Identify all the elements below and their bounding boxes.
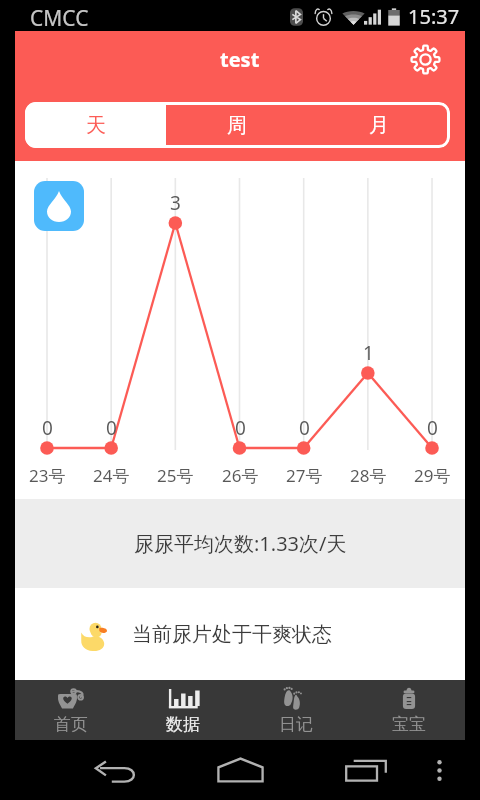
staticText: 月 bbox=[369, 113, 389, 138]
staticText: 0 bbox=[299, 415, 310, 437]
staticText: 23号 bbox=[29, 464, 66, 487]
button[interactable]: 月 bbox=[308, 102, 450, 148]
staticText: 26号 bbox=[222, 464, 259, 487]
staticText: 0 bbox=[427, 415, 438, 437]
button[interactable]: Home bbox=[205, 750, 275, 790]
button[interactable]: 宝宝 bbox=[352, 680, 465, 740]
button[interactable]: Pee record bbox=[34, 181, 84, 231]
staticText: 数据 bbox=[166, 714, 200, 735]
staticText: 28号 bbox=[350, 464, 387, 487]
staticText: 27号 bbox=[286, 464, 323, 487]
staticText: 当前尿片处于干爽状态 bbox=[132, 622, 332, 647]
button[interactable]: Recents bbox=[336, 750, 396, 790]
staticText: 1 bbox=[363, 340, 374, 362]
button[interactable]: 当前尿片处于干爽状态 bbox=[15, 588, 465, 680]
staticText: 29号 bbox=[414, 464, 451, 487]
staticText: 天 bbox=[86, 113, 106, 138]
staticText: 宝宝 bbox=[392, 714, 426, 735]
staticText: 首页 bbox=[54, 714, 88, 735]
staticText: 15:37 bbox=[408, 3, 460, 30]
button[interactable]: Settings bbox=[403, 37, 447, 81]
button[interactable]: 天 bbox=[25, 102, 166, 148]
staticText: 3 bbox=[170, 190, 181, 212]
staticText: CMCC bbox=[30, 4, 89, 31]
staticText: 周 bbox=[227, 113, 247, 138]
staticText: 0 bbox=[106, 415, 117, 437]
staticText: 24号 bbox=[93, 464, 130, 487]
staticText: 日记 bbox=[279, 714, 313, 735]
button[interactable]: Back bbox=[86, 752, 146, 792]
staticText: test bbox=[220, 46, 260, 73]
button[interactable]: 日记 bbox=[239, 680, 352, 740]
staticText: 25号 bbox=[157, 464, 194, 487]
button[interactable]: 周 bbox=[166, 102, 308, 148]
staticText: 0 bbox=[42, 415, 53, 437]
button[interactable]: 首页 bbox=[15, 680, 127, 740]
staticText: 0 bbox=[235, 415, 246, 437]
button[interactable]: More options bbox=[422, 750, 456, 790]
button[interactable]: 数据 bbox=[127, 680, 239, 740]
staticText: 尿尿平均次数:1.33次/天 bbox=[134, 530, 347, 557]
